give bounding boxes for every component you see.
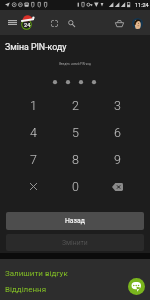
staticText: Відділення: [5, 285, 47, 294]
staticText: Залишити відгук: [5, 269, 68, 278]
staticText: Змінити: [62, 239, 88, 247]
staticText: 7: [30, 152, 37, 167]
staticText: 1: [30, 98, 37, 113]
staticText: 3: [114, 98, 121, 113]
button[interactable]: Chat support: [128, 278, 145, 295]
button[interactable]: 5: [54, 119, 96, 146]
staticText: 6: [114, 125, 121, 140]
staticText: Зміна PIN-коду: [5, 42, 67, 52]
staticText: 4: [30, 125, 37, 140]
button[interactable]: Змінити: [6, 234, 144, 251]
staticText: 5: [72, 125, 79, 140]
button[interactable]: Menu: [2, 12, 22, 32]
staticText: 24: [24, 22, 31, 29]
button[interactable]: 9: [96, 146, 138, 173]
button[interactable]: Bonus points: [18, 13, 38, 33]
staticText: Введіть новий PIN-код: [59, 62, 91, 66]
staticText: 2: [72, 98, 79, 113]
button[interactable]: Clear: [12, 173, 54, 200]
button[interactable]: Назад: [6, 212, 144, 230]
button[interactable]: Scan QR code: [44, 13, 64, 33]
button[interactable]: Search: [61, 13, 81, 33]
button[interactable]: 7: [12, 146, 54, 173]
button[interactable]: Залишити відгук: [0, 266, 150, 281]
button[interactable]: 8: [54, 146, 96, 173]
button[interactable]: Shopping basket: [109, 13, 129, 33]
other: Backspace: [112, 183, 123, 191]
other: Clear: [30, 183, 37, 190]
button[interactable]: 2: [54, 92, 96, 119]
button[interactable]: Backspace: [96, 173, 138, 200]
staticText: 9: [114, 152, 121, 167]
button[interactable]: 1: [12, 92, 54, 119]
button[interactable]: Відділення: [0, 282, 150, 297]
button[interactable]: 4: [12, 119, 54, 146]
button[interactable]: Profile: [127, 13, 147, 33]
staticText: 8: [72, 152, 79, 167]
staticText: 0: [72, 179, 79, 194]
staticText: 11:24: [135, 2, 149, 8]
staticText: Назад: [65, 217, 85, 225]
button[interactable]: 6: [96, 119, 138, 146]
button[interactable]: 0: [54, 173, 96, 200]
button[interactable]: 3: [96, 92, 138, 119]
